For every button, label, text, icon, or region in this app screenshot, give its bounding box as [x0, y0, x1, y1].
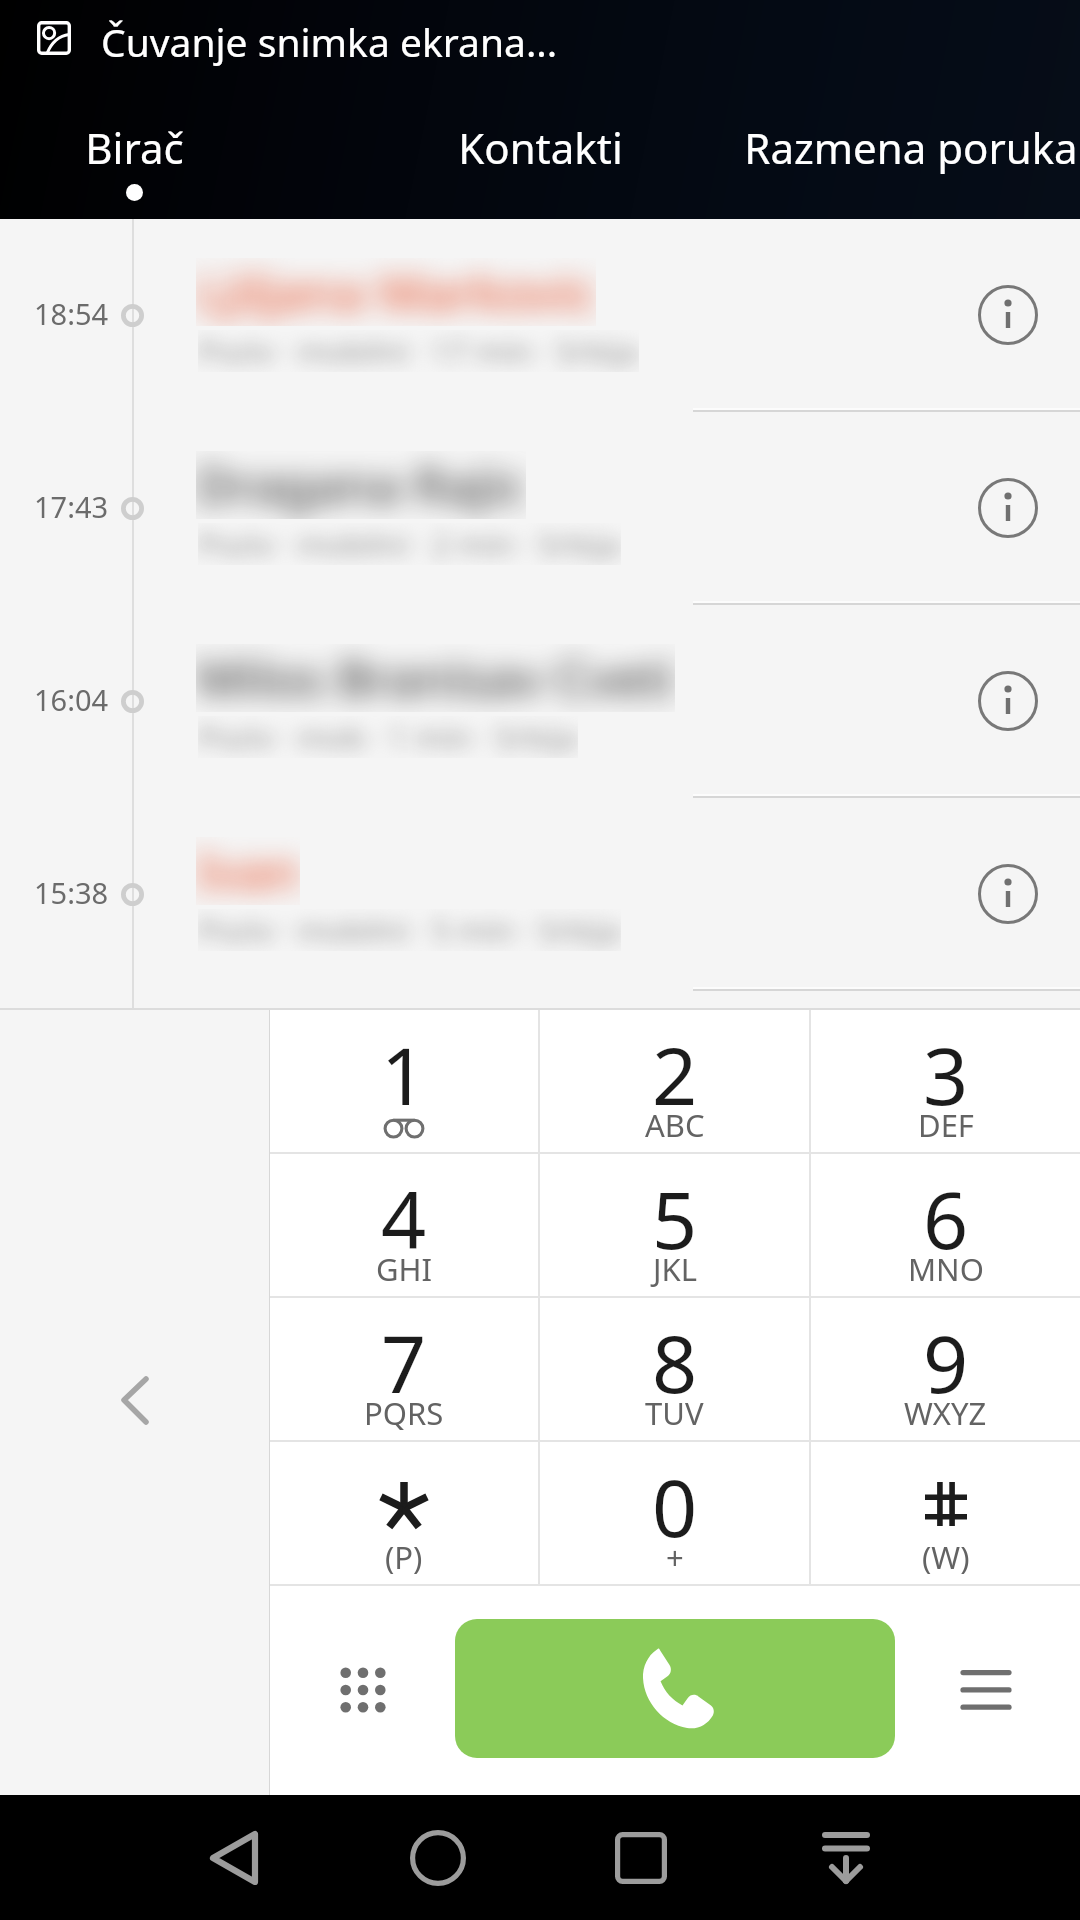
staticText: +	[666, 1536, 684, 1578]
button[interactable]: Recent apps	[581, 1795, 701, 1920]
button[interactable]: 9	[811, 1298, 1080, 1440]
staticText: Čuvanje snimka ekrana...	[101, 15, 558, 68]
staticText: 6	[923, 1165, 969, 1273]
staticText: 1	[381, 1021, 427, 1129]
staticText: Poziv · mobilni · 5 min · Srbija	[198, 909, 621, 951]
staticText: Ivan	[196, 837, 300, 905]
staticText: 15:38	[34, 873, 109, 912]
staticText: 16:04	[34, 680, 109, 719]
staticText: ABC	[645, 1104, 705, 1146]
staticText: DEF	[918, 1104, 974, 1146]
staticText: 2	[652, 1021, 698, 1129]
staticText: 8	[652, 1309, 698, 1417]
staticText: WXYZ	[904, 1392, 987, 1434]
button[interactable]: 16:04	[0, 605, 1080, 798]
button[interactable]: Home	[378, 1795, 498, 1920]
staticText: 0	[652, 1453, 698, 1561]
staticText: Ljiljana Markovic	[196, 258, 596, 326]
staticText: Poziv · mob · 1 min · Srbija	[198, 716, 578, 758]
staticText: 4	[381, 1165, 427, 1273]
button[interactable]: 3	[811, 1010, 1080, 1152]
button[interactable]: 17:43	[0, 412, 1080, 605]
button[interactable]: (W)	[811, 1442, 1080, 1584]
staticText: GHI	[376, 1248, 433, 1290]
button[interactable]: Kontakti	[380, 105, 700, 219]
staticText: 7	[381, 1309, 427, 1417]
staticText: 17:43	[34, 487, 109, 526]
staticText: (P)	[385, 1536, 423, 1578]
button[interactable]: 18:54	[0, 219, 1080, 412]
staticText: MNO	[908, 1248, 984, 1290]
button[interactable]: 1	[270, 1010, 538, 1152]
staticText: PQRS	[364, 1392, 444, 1434]
staticText: Dragana Rajic	[196, 451, 526, 519]
staticText: (W)	[922, 1536, 970, 1578]
staticText: TUV	[645, 1392, 704, 1434]
button[interactable]: 6	[811, 1154, 1080, 1296]
staticText: JKL	[653, 1248, 697, 1290]
staticText: 9	[923, 1309, 969, 1417]
button[interactable]: 2	[540, 1010, 809, 1152]
button[interactable]: 8	[540, 1298, 809, 1440]
button[interactable]: Collapse dialpad	[0, 1008, 269, 1795]
button[interactable]: Keypad	[303, 1630, 423, 1750]
button[interactable]: (P)	[270, 1442, 538, 1584]
button[interactable]: Call details	[948, 834, 1068, 954]
staticText: Poziv · mobilni · 17 min · Srbija	[198, 330, 639, 372]
staticText: Poziv · mobilni · 2 min · Srbija	[198, 523, 621, 565]
button[interactable]: Razmena poruka	[736, 105, 1080, 219]
button[interactable]: 5	[540, 1154, 809, 1296]
button[interactable]: Call details	[948, 255, 1068, 375]
button[interactable]: Back	[174, 1795, 294, 1920]
staticText: 5	[652, 1165, 698, 1273]
button[interactable]: More options	[926, 1630, 1046, 1750]
staticText: Razmena poruka	[744, 119, 1078, 176]
button[interactable]: Call details	[948, 448, 1068, 568]
button[interactable]: Call details	[948, 641, 1068, 761]
staticText: 3	[923, 1021, 969, 1129]
staticText: 18:54	[34, 294, 109, 333]
staticText: Kontakti	[458, 119, 623, 176]
button[interactable]: 0	[540, 1442, 809, 1584]
button[interactable]: 7	[270, 1298, 538, 1440]
button[interactable]: Call	[455, 1619, 895, 1758]
button[interactable]: Hide navigation bar	[786, 1795, 906, 1920]
button[interactable]: 4	[270, 1154, 538, 1296]
button[interactable]: Birač	[8, 105, 260, 219]
button[interactable]: 15:38	[0, 798, 1080, 991]
staticText: Milos Branisav Cveti	[196, 644, 675, 712]
staticText: Birač	[85, 119, 184, 176]
